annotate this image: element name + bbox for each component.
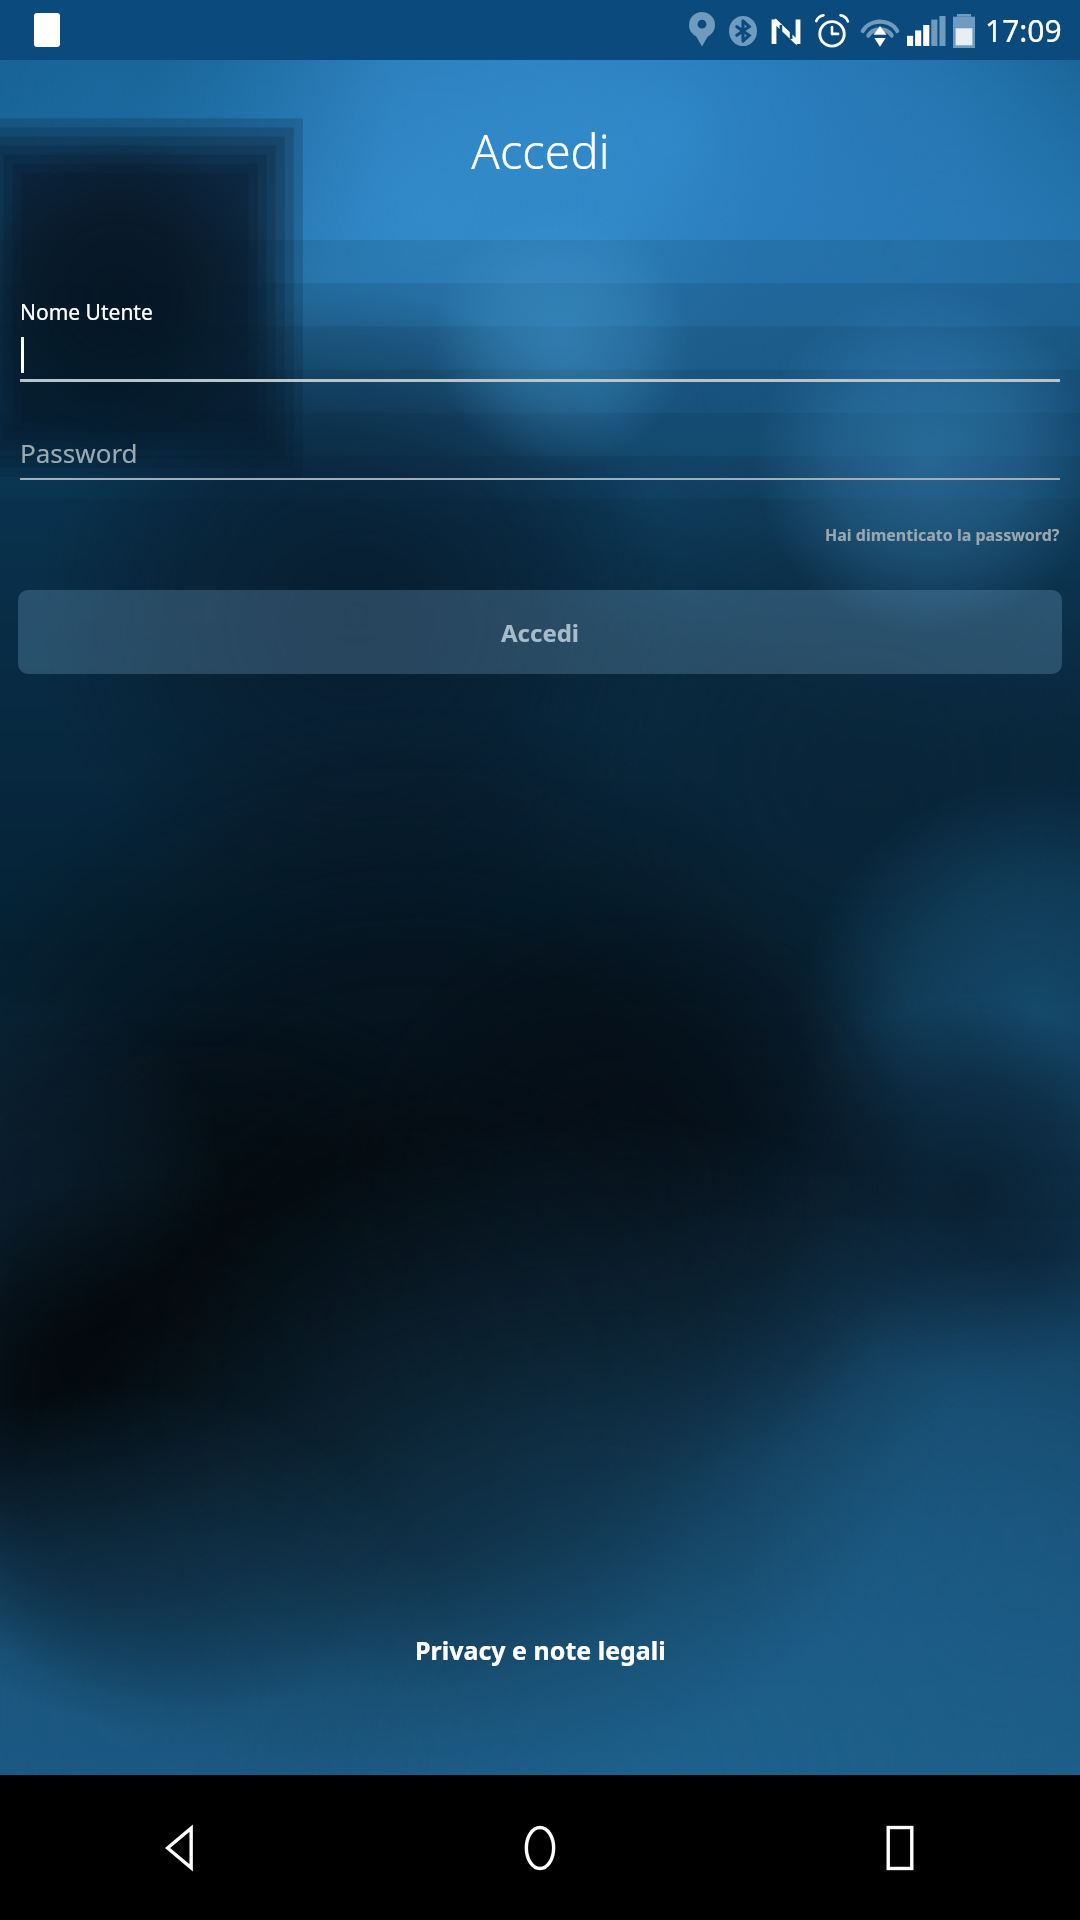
button[interactable]: Password — [20, 430, 1060, 480]
staticText: Password — [20, 435, 138, 470]
button[interactable]: Accedi — [18, 590, 1062, 674]
staticText: Accedi — [471, 119, 610, 183]
button[interactable]: Back — [0, 1775, 360, 1920]
button[interactable]: Recents — [720, 1775, 1080, 1920]
button[interactable]: Privacy e note legali — [399, 1625, 682, 1675]
button[interactable]: Hai dimenticato la password? — [825, 520, 1060, 550]
button[interactable]: Nome Utente — [20, 298, 1060, 382]
staticText: Accedi — [501, 616, 580, 649]
staticText: 17:09 — [985, 10, 1062, 51]
button[interactable]: Home — [360, 1775, 720, 1920]
staticText: Nome Utente — [20, 298, 153, 327]
